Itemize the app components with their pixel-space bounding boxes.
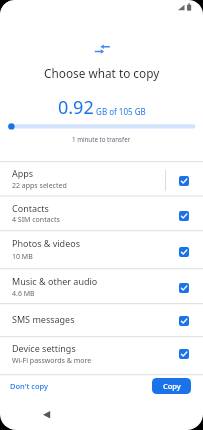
button[interactable]: SMS messages bbox=[0, 304, 203, 337]
staticText: 4.6 MB bbox=[12, 289, 35, 299]
staticText: 10 MB bbox=[12, 252, 33, 262]
staticText: Don't copy bbox=[10, 381, 49, 391]
staticText: Contacts bbox=[12, 202, 49, 214]
staticText: Apps bbox=[12, 167, 34, 179]
staticText: 4 SIM contacts bbox=[12, 215, 60, 225]
button[interactable]: Photos & videos bbox=[0, 231, 203, 269]
staticText: Choose what to copy bbox=[44, 65, 160, 81]
staticText: Music & other audio bbox=[12, 275, 98, 287]
button[interactable]: Copy bbox=[152, 378, 191, 394]
button[interactable] bbox=[36, 405, 58, 425]
staticText: 1 minute to transfer bbox=[72, 135, 131, 143]
button[interactable]: Don't copy bbox=[6, 377, 45, 387]
staticText: SMS messages bbox=[12, 313, 75, 325]
staticText: Device settings bbox=[12, 342, 76, 354]
staticText: Photos & videos bbox=[12, 237, 80, 249]
staticText: 22 apps selected bbox=[12, 181, 67, 191]
button[interactable]: Contacts bbox=[0, 196, 203, 231]
button[interactable]: Device settings bbox=[0, 337, 203, 375]
button[interactable]: Music & other audio bbox=[0, 269, 203, 304]
staticText: Wi-Fi passwords & more bbox=[12, 356, 92, 366]
staticText: GB of 105 GB bbox=[94, 106, 146, 117]
staticText: Copy bbox=[163, 381, 181, 391]
staticText: 0.92 bbox=[58, 95, 94, 120]
button[interactable]: Apps bbox=[0, 162, 203, 197]
